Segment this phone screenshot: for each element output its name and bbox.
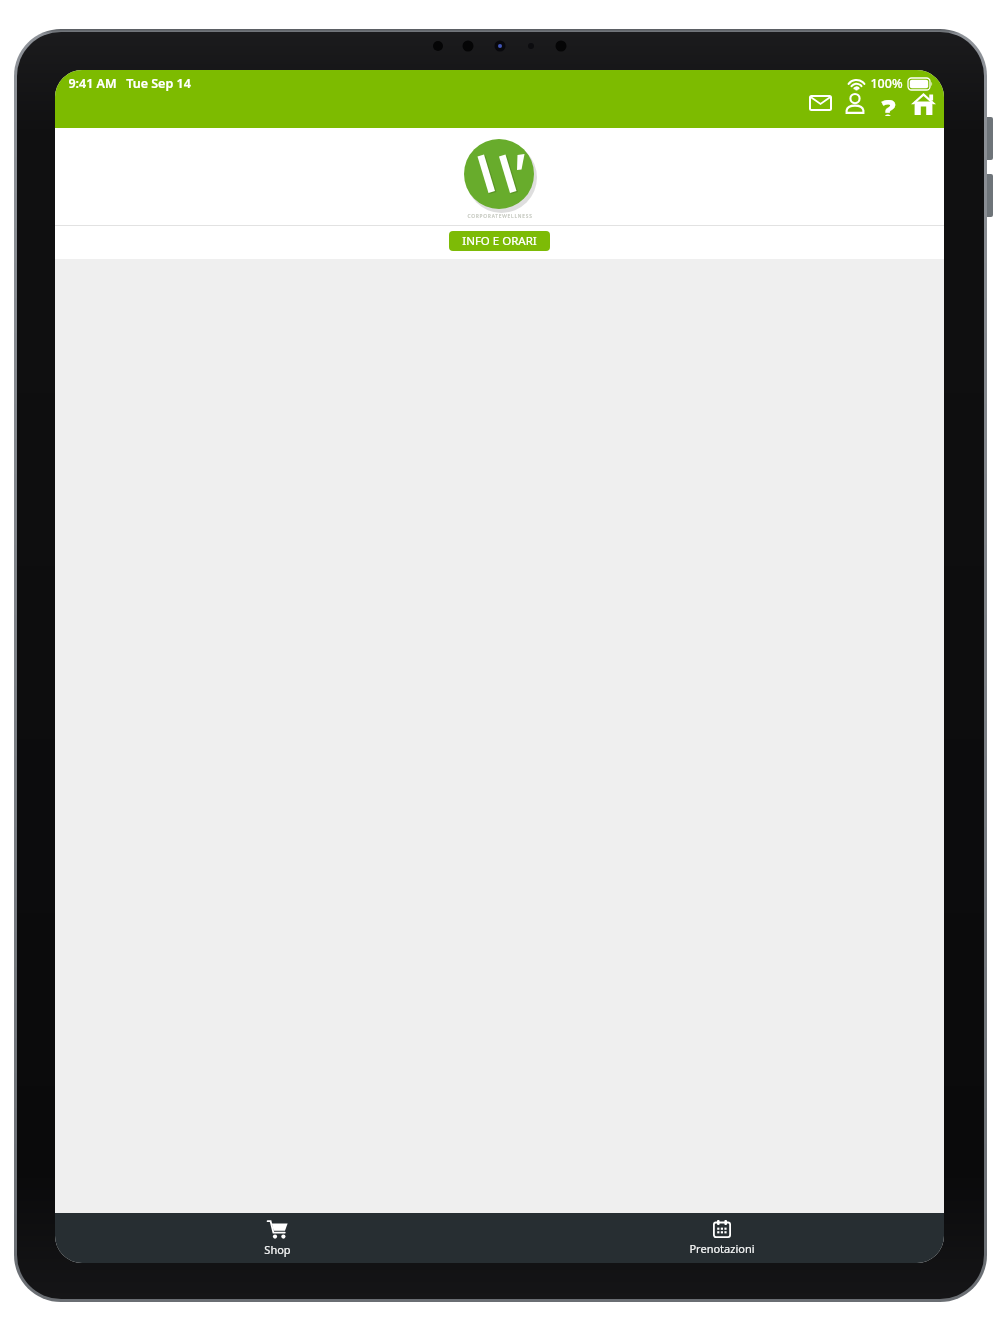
- button[interactable]: [841, 90, 869, 116]
- button[interactable]: [805, 90, 835, 116]
- staticText: Prenotazioni: [689, 1241, 755, 1256]
- button[interactable]: Shop: [55, 1213, 499, 1263]
- button[interactable]: [908, 90, 938, 116]
- staticText: ?: [881, 90, 896, 116]
- staticText: INFO E ORARI: [462, 233, 537, 249]
- button[interactable]: INFO E ORARI: [449, 231, 550, 251]
- staticText: CORPORATEWELLNESS: [467, 213, 533, 220]
- staticText: 9:41 AM: [68, 75, 117, 92]
- staticText: Shop: [264, 1242, 291, 1257]
- button[interactable]: ?: [875, 90, 901, 116]
- staticText: 100%: [870, 75, 903, 92]
- staticText: Tue Sep 14: [126, 75, 191, 92]
- button[interactable]: Prenotazioni: [499, 1213, 944, 1263]
